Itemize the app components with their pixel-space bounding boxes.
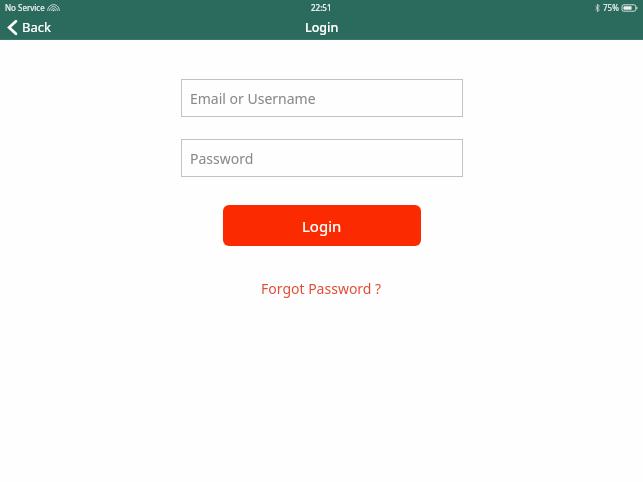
staticText: Password xyxy=(190,149,254,168)
staticText: Login xyxy=(302,216,342,236)
staticText: No Service xyxy=(5,2,45,13)
button[interactable]: Login xyxy=(223,205,421,246)
staticText: Email or Username xyxy=(190,89,316,108)
button[interactable]: Email or Username xyxy=(181,79,463,117)
button[interactable]: Password xyxy=(181,139,463,177)
button[interactable]: Forgot Password ? xyxy=(249,275,394,302)
staticText: Forgot Password ? xyxy=(261,279,382,298)
staticText: 22:51 xyxy=(311,2,332,13)
button[interactable]: Back xyxy=(0,15,63,39)
staticText: Login xyxy=(305,19,339,36)
staticText: Back xyxy=(22,18,51,36)
staticText: 75% xyxy=(603,2,619,13)
